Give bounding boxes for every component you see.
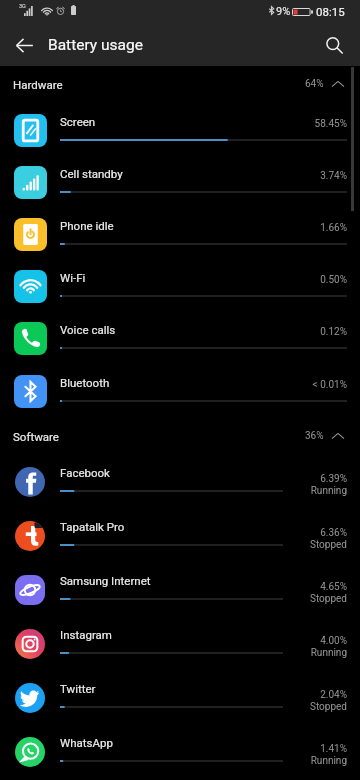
staticText: Twitter: [60, 682, 96, 695]
staticText: 08:15: [316, 5, 345, 18]
button[interactable]: WhatsApp: [0, 729, 360, 780]
button[interactable]: Back: [4, 25, 44, 65]
staticText: 0.12%: [0, 326, 347, 338]
staticText: Voice calls: [60, 323, 116, 336]
button[interactable]: Tapatalk Pro: [0, 513, 360, 567]
staticText: 0.50%: [0, 274, 347, 286]
button[interactable]: Facebook: [0, 459, 360, 513]
staticText: 1.41%: [0, 743, 347, 755]
staticText: WhatsApp: [60, 736, 113, 749]
button[interactable]: Instagram: [0, 621, 360, 675]
button[interactable]: Search: [314, 25, 354, 65]
button[interactable]: Cell standby: [0, 157, 360, 209]
staticText: Stopped: [0, 593, 347, 605]
staticText: Software: [13, 430, 59, 443]
staticText: Samsung Internet: [60, 574, 151, 587]
staticText: Cell standby: [60, 167, 123, 180]
staticText: 3.74%: [0, 170, 347, 182]
button[interactable]: Software: [0, 419, 360, 453]
staticText: 4.00%: [0, 635, 347, 647]
staticText: Wi-Fi: [60, 271, 86, 284]
staticText: 1.66%: [0, 222, 347, 234]
staticText: Running: [0, 755, 347, 767]
staticText: Running: [0, 647, 347, 659]
staticText: Phone idle: [60, 219, 114, 232]
button[interactable]: Wi-Fi: [0, 261, 360, 313]
staticText: 2.04%: [0, 689, 347, 701]
staticText: 6.39%: [0, 473, 347, 485]
button[interactable]: Twitter: [0, 675, 360, 729]
staticText: < 0.01%: [0, 379, 347, 391]
staticText: 9%: [276, 5, 291, 18]
staticText: 4.65%: [0, 581, 347, 593]
staticText: 58.45%: [0, 118, 347, 130]
staticText: Facebook: [60, 466, 110, 479]
staticText: Battery usage: [48, 36, 143, 54]
staticText: Running: [0, 485, 347, 497]
staticText: 64%: [305, 78, 324, 90]
staticText: Tapatalk Pro: [60, 520, 125, 533]
staticText: 36%: [305, 430, 324, 442]
staticText: Bluetooth: [60, 376, 110, 389]
staticText: Hardware: [13, 78, 63, 91]
button[interactable]: Phone idle: [0, 209, 360, 261]
button[interactable]: Hardware: [0, 67, 360, 101]
staticText: Stopped: [0, 701, 347, 713]
button[interactable]: Samsung Internet: [0, 567, 360, 621]
staticText: 6.36%: [0, 527, 347, 539]
button[interactable]: Bluetooth: [0, 366, 360, 418]
button[interactable]: Voice calls: [0, 313, 360, 365]
button[interactable]: Screen: [0, 105, 360, 157]
staticText: 3G: [19, 3, 26, 9]
staticText: Screen: [60, 115, 96, 128]
staticText: Instagram: [60, 628, 112, 641]
staticText: Stopped: [0, 539, 347, 551]
